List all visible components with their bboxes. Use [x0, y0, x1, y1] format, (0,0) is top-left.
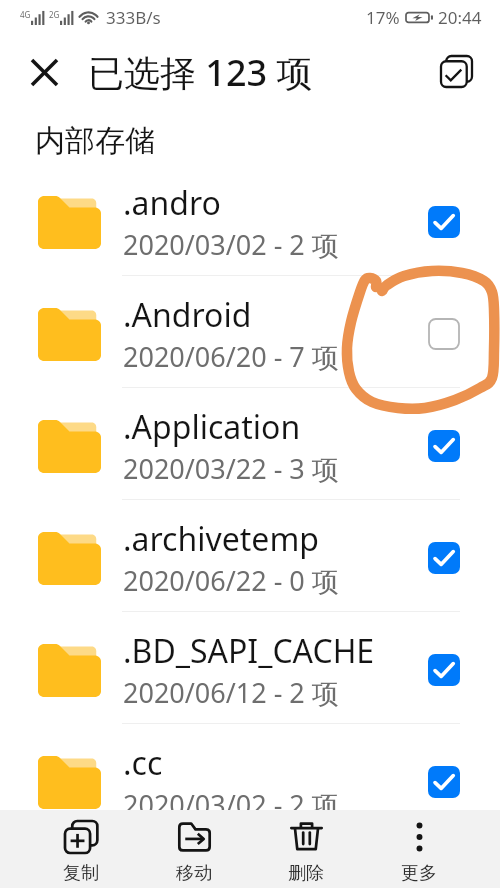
- staticText: 2020/06/22 - 0 项: [123, 562, 339, 599]
- staticText: 2020/03/02 - 2 项: [123, 226, 339, 263]
- staticText: 2020/03/02 - 2 项: [123, 786, 339, 823]
- staticText: 2020/06/12 - 2 项: [123, 674, 339, 711]
- staticText: 4G: [20, 9, 31, 20]
- staticText: .andro: [123, 181, 221, 225]
- button[interactable]: 移动: [138, 810, 250, 888]
- staticText: .BD_SAPI_CACHE: [123, 629, 375, 673]
- button[interactable]: 复制: [25, 810, 137, 888]
- button[interactable]: Selected: [412, 166, 476, 278]
- staticText: 333B/s: [106, 6, 161, 29]
- button[interactable]: .cc: [0, 724, 500, 836]
- staticText: 更多: [401, 862, 437, 885]
- staticText: .Application: [123, 405, 301, 449]
- staticText: 20:44: [438, 6, 482, 29]
- button[interactable]: .BD_SAPI_CACHE: [0, 612, 500, 724]
- button[interactable]: 删除: [250, 810, 362, 888]
- staticText: .Android: [123, 293, 252, 337]
- button[interactable]: Select all: [414, 39, 498, 103]
- button[interactable]: .andro: [0, 164, 500, 276]
- button[interactable]: 更多: [363, 810, 475, 888]
- staticText: .archivetemp: [123, 517, 320, 561]
- button[interactable]: .Application: [0, 388, 500, 500]
- staticText: 移动: [176, 862, 212, 885]
- staticText: 2020/06/20 - 7 项: [123, 338, 339, 375]
- staticText: 已选择 123 项: [88, 48, 313, 97]
- button[interactable]: .archivetemp: [0, 500, 500, 612]
- button[interactable]: Selected: [412, 614, 476, 726]
- button[interactable]: Close: [0, 40, 88, 104]
- staticText: 复制: [63, 862, 99, 885]
- button[interactable]: .Android: [0, 276, 500, 388]
- staticText: 17%: [366, 6, 400, 29]
- staticText: 内部存储: [35, 122, 155, 160]
- staticText: 删除: [288, 862, 324, 885]
- button[interactable]: Selected: [412, 502, 476, 614]
- button[interactable]: Selected: [412, 726, 476, 838]
- button[interactable]: Not selected: [412, 278, 476, 390]
- staticText: 2020/03/22 - 3 项: [123, 450, 339, 487]
- staticText: .cc: [123, 741, 163, 785]
- staticText: 2G: [49, 9, 60, 20]
- button[interactable]: Selected: [412, 390, 476, 502]
